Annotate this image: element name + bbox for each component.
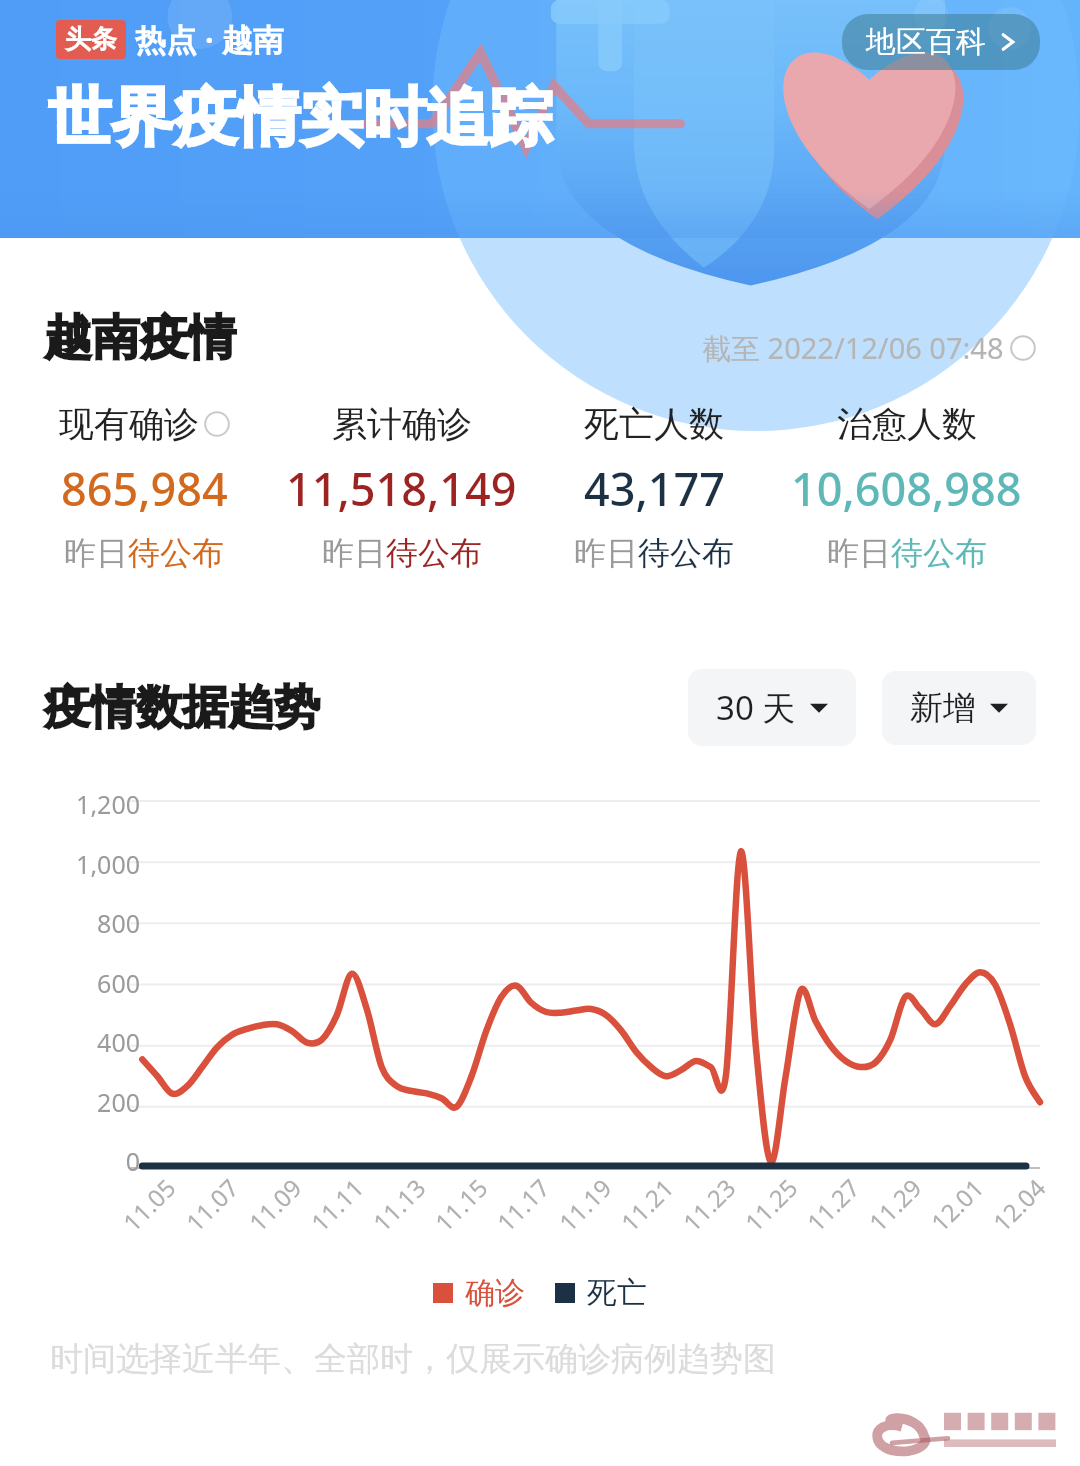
staticText: 累计确诊 <box>332 402 472 446</box>
staticText: 1,000 <box>56 847 140 881</box>
staticText: 200 <box>56 1085 140 1119</box>
button[interactable]: 地区百科 <box>842 14 1040 70</box>
staticText: 昨日待公布 <box>64 533 224 573</box>
staticText: 越南疫情 <box>44 308 236 368</box>
button[interactable]: 现有确诊 <box>30 402 258 573</box>
staticText: 时间选择近半年、全部时，仅展示确诊病例趋势图 <box>50 1338 776 1380</box>
button[interactable]: 新增 <box>882 671 1036 745</box>
staticText: 死亡人数 <box>584 402 724 446</box>
button[interactable]: 30 天 <box>688 669 856 746</box>
staticText: 12.04 <box>985 1171 1053 1238</box>
staticText: 昨日待公布 <box>322 533 482 573</box>
staticText: 43,177 <box>584 458 725 519</box>
staticText: 现有确诊 <box>59 402 199 446</box>
staticText: 治愈人数 <box>837 402 977 446</box>
staticText: 11.11 <box>303 1171 371 1238</box>
staticText: 世界疫情实时追踪 <box>48 78 552 157</box>
staticText: 11.13 <box>365 1171 433 1238</box>
staticText: 11,518,149 <box>286 458 517 519</box>
staticText: 热点 · 越南 <box>135 18 284 60</box>
staticText: 600 <box>56 966 140 1000</box>
staticText: 11.09 <box>241 1171 309 1238</box>
staticText: 1,200 <box>56 787 140 821</box>
staticText: 新增 <box>910 687 976 729</box>
staticText: 11.27 <box>799 1171 867 1238</box>
staticText: 确诊 <box>465 1274 525 1312</box>
button[interactable]: 累计确诊 <box>258 402 545 573</box>
staticText: 昨日待公布 <box>574 533 734 573</box>
staticText: 800 <box>56 906 140 940</box>
staticText: 0 <box>56 1144 140 1178</box>
button[interactable]: 死亡人数 <box>545 402 763 573</box>
staticText: 截至 2022/12/06 07:48 <box>702 328 1004 368</box>
staticText: 11.21 <box>613 1171 681 1238</box>
staticText: 昨日待公布 <box>827 533 987 573</box>
staticText: 11.19 <box>551 1171 619 1238</box>
staticText: 400 <box>56 1025 140 1059</box>
staticText: 11.15 <box>427 1171 495 1238</box>
staticText: 865,984 <box>61 458 228 519</box>
staticText: 头条 <box>65 23 117 56</box>
staticText: 10,608,988 <box>791 458 1022 519</box>
staticText: 11.29 <box>861 1171 929 1238</box>
staticText: 12.01 <box>923 1171 991 1238</box>
staticText: 30 天 <box>716 685 796 730</box>
staticText: 疫情数据趋势 <box>44 679 320 737</box>
staticText: 11.17 <box>489 1171 557 1238</box>
staticText: 死亡 <box>587 1274 647 1312</box>
staticText: 地区百科 <box>866 23 986 61</box>
staticText: 11.25 <box>737 1171 805 1238</box>
staticText: 11.07 <box>178 1171 246 1238</box>
staticText: 11.23 <box>675 1171 743 1238</box>
staticText: 11.05 <box>115 1171 183 1238</box>
button[interactable]: 治愈人数 <box>763 402 1050 573</box>
